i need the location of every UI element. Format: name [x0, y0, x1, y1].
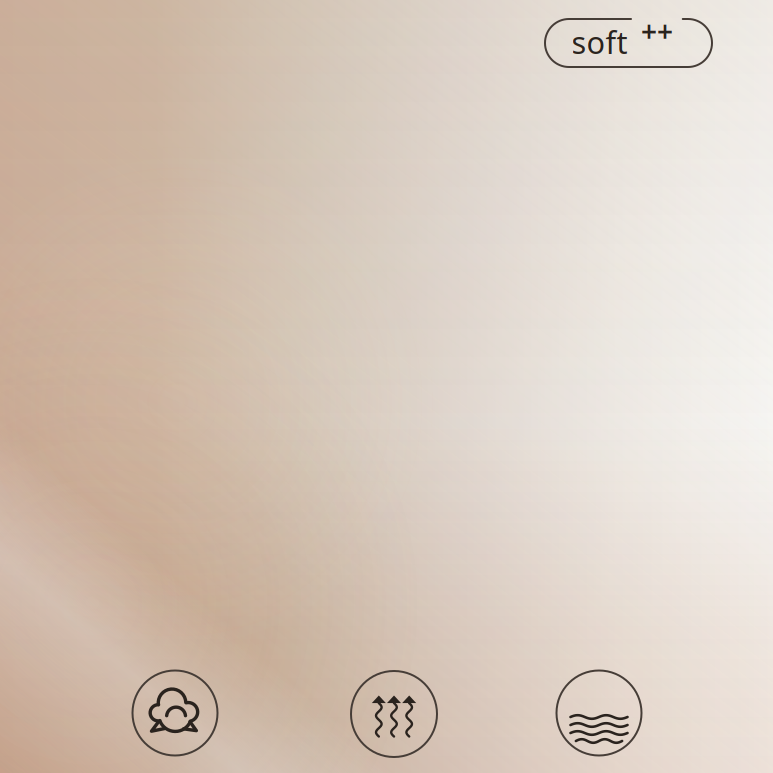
button[interactable]: Breathability — [350, 670, 438, 758]
staticText: soft — [571, 22, 627, 62]
button[interactable]: soft — [545, 19, 712, 67]
button[interactable]: Moisture wicking — [555, 669, 642, 756]
button[interactable]: Softness — [131, 669, 218, 756]
staticText: ++ — [641, 12, 673, 50]
